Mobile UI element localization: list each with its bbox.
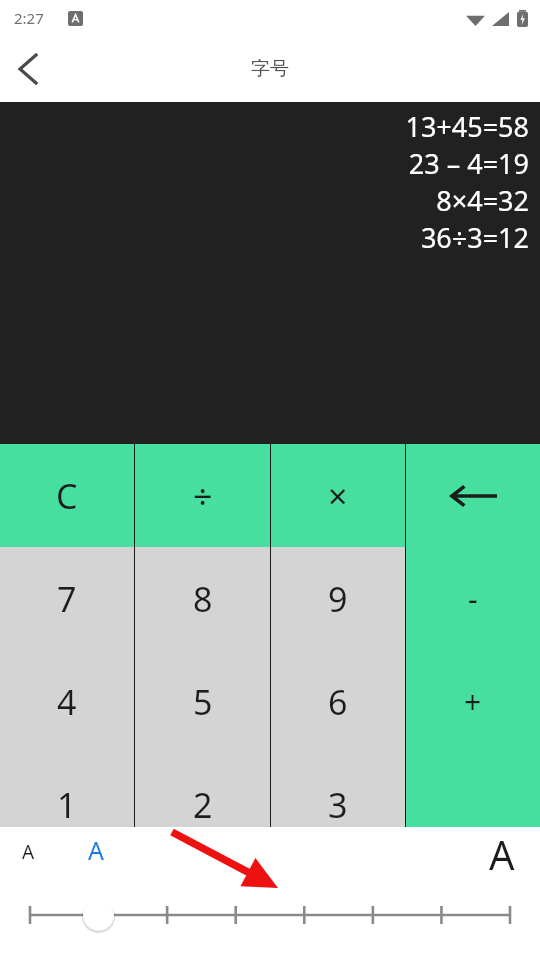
staticText: A xyxy=(88,833,104,867)
staticText: 8×4=32 xyxy=(0,182,529,219)
button[interactable]: Back xyxy=(0,41,56,97)
button[interactable] xyxy=(406,753,540,856)
button[interactable]: 7 xyxy=(0,547,134,650)
staticText: 7 xyxy=(57,576,77,622)
staticText: C xyxy=(56,473,78,519)
button[interactable]: + xyxy=(406,650,540,753)
button[interactable]: ÷ xyxy=(135,444,270,547)
staticText: A xyxy=(489,827,515,881)
staticText: 字号 xyxy=(251,57,289,81)
button[interactable]: 9 xyxy=(271,547,405,650)
staticText: 8 xyxy=(193,576,213,622)
button[interactable]: 3 xyxy=(271,753,405,856)
button[interactable]: C xyxy=(0,444,134,547)
button[interactable]: Backspace xyxy=(406,444,540,547)
staticText: A xyxy=(22,839,35,865)
staticText: 13+45=58 xyxy=(0,108,529,145)
staticText: 6 xyxy=(328,679,348,725)
staticText: 4 xyxy=(57,679,77,725)
staticText: - xyxy=(468,578,478,619)
button[interactable]: 8 xyxy=(135,547,270,650)
staticText: 1 xyxy=(57,782,77,828)
staticText: 9 xyxy=(328,576,348,622)
staticText: × xyxy=(328,473,348,519)
button[interactable]: 5 xyxy=(135,650,270,753)
button[interactable]: 6 xyxy=(271,650,405,753)
button[interactable]: 2 xyxy=(135,753,270,856)
staticText: 3 xyxy=(328,782,348,828)
button[interactable]: × xyxy=(271,444,405,547)
staticText: 36÷3=12 xyxy=(0,219,529,256)
staticText: 23 – 4=19 xyxy=(0,145,529,182)
staticText: ÷ xyxy=(193,473,213,519)
staticText: + xyxy=(464,681,482,722)
staticText: 2 xyxy=(193,782,213,828)
staticText: 5 xyxy=(193,679,213,725)
staticText: 2:27 xyxy=(14,8,44,28)
button[interactable]: 4 xyxy=(0,650,134,753)
button[interactable] xyxy=(0,887,540,943)
button[interactable]: 1 xyxy=(0,753,134,856)
button[interactable]: - xyxy=(406,547,540,650)
